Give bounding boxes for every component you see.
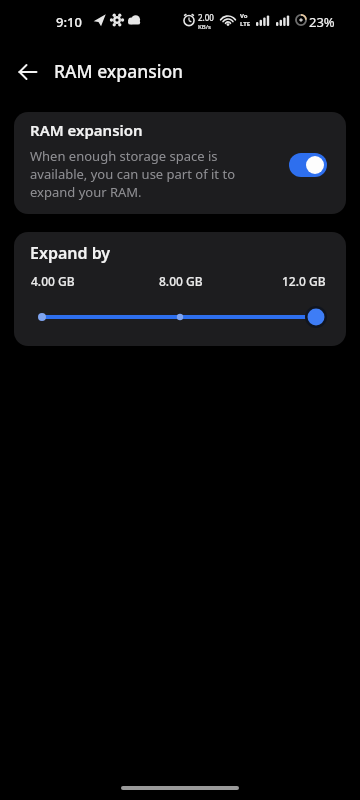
staticText: 2.00: [198, 12, 214, 23]
button[interactable]: [8, 52, 48, 92]
staticText: 4.00 GB: [31, 273, 75, 289]
staticText: 9:10: [56, 13, 82, 31]
staticText: KB/s: [198, 23, 211, 31]
button[interactable]: [14, 303, 346, 331]
staticText: LTE: [240, 20, 251, 28]
button[interactable]: [289, 153, 327, 177]
staticText: RAM expansion: [54, 59, 184, 83]
staticText: Expand by: [30, 242, 111, 264]
staticText: RAM expansion: [30, 120, 143, 140]
button[interactable]: RAM expansion: [14, 112, 346, 214]
staticText: 23%: [309, 13, 335, 31]
staticText: 12.0 GB: [282, 273, 326, 289]
staticText: When enough storage space is available, …: [30, 147, 235, 201]
staticText: Vo: [240, 12, 248, 20]
staticText: 8.00 GB: [159, 273, 203, 289]
